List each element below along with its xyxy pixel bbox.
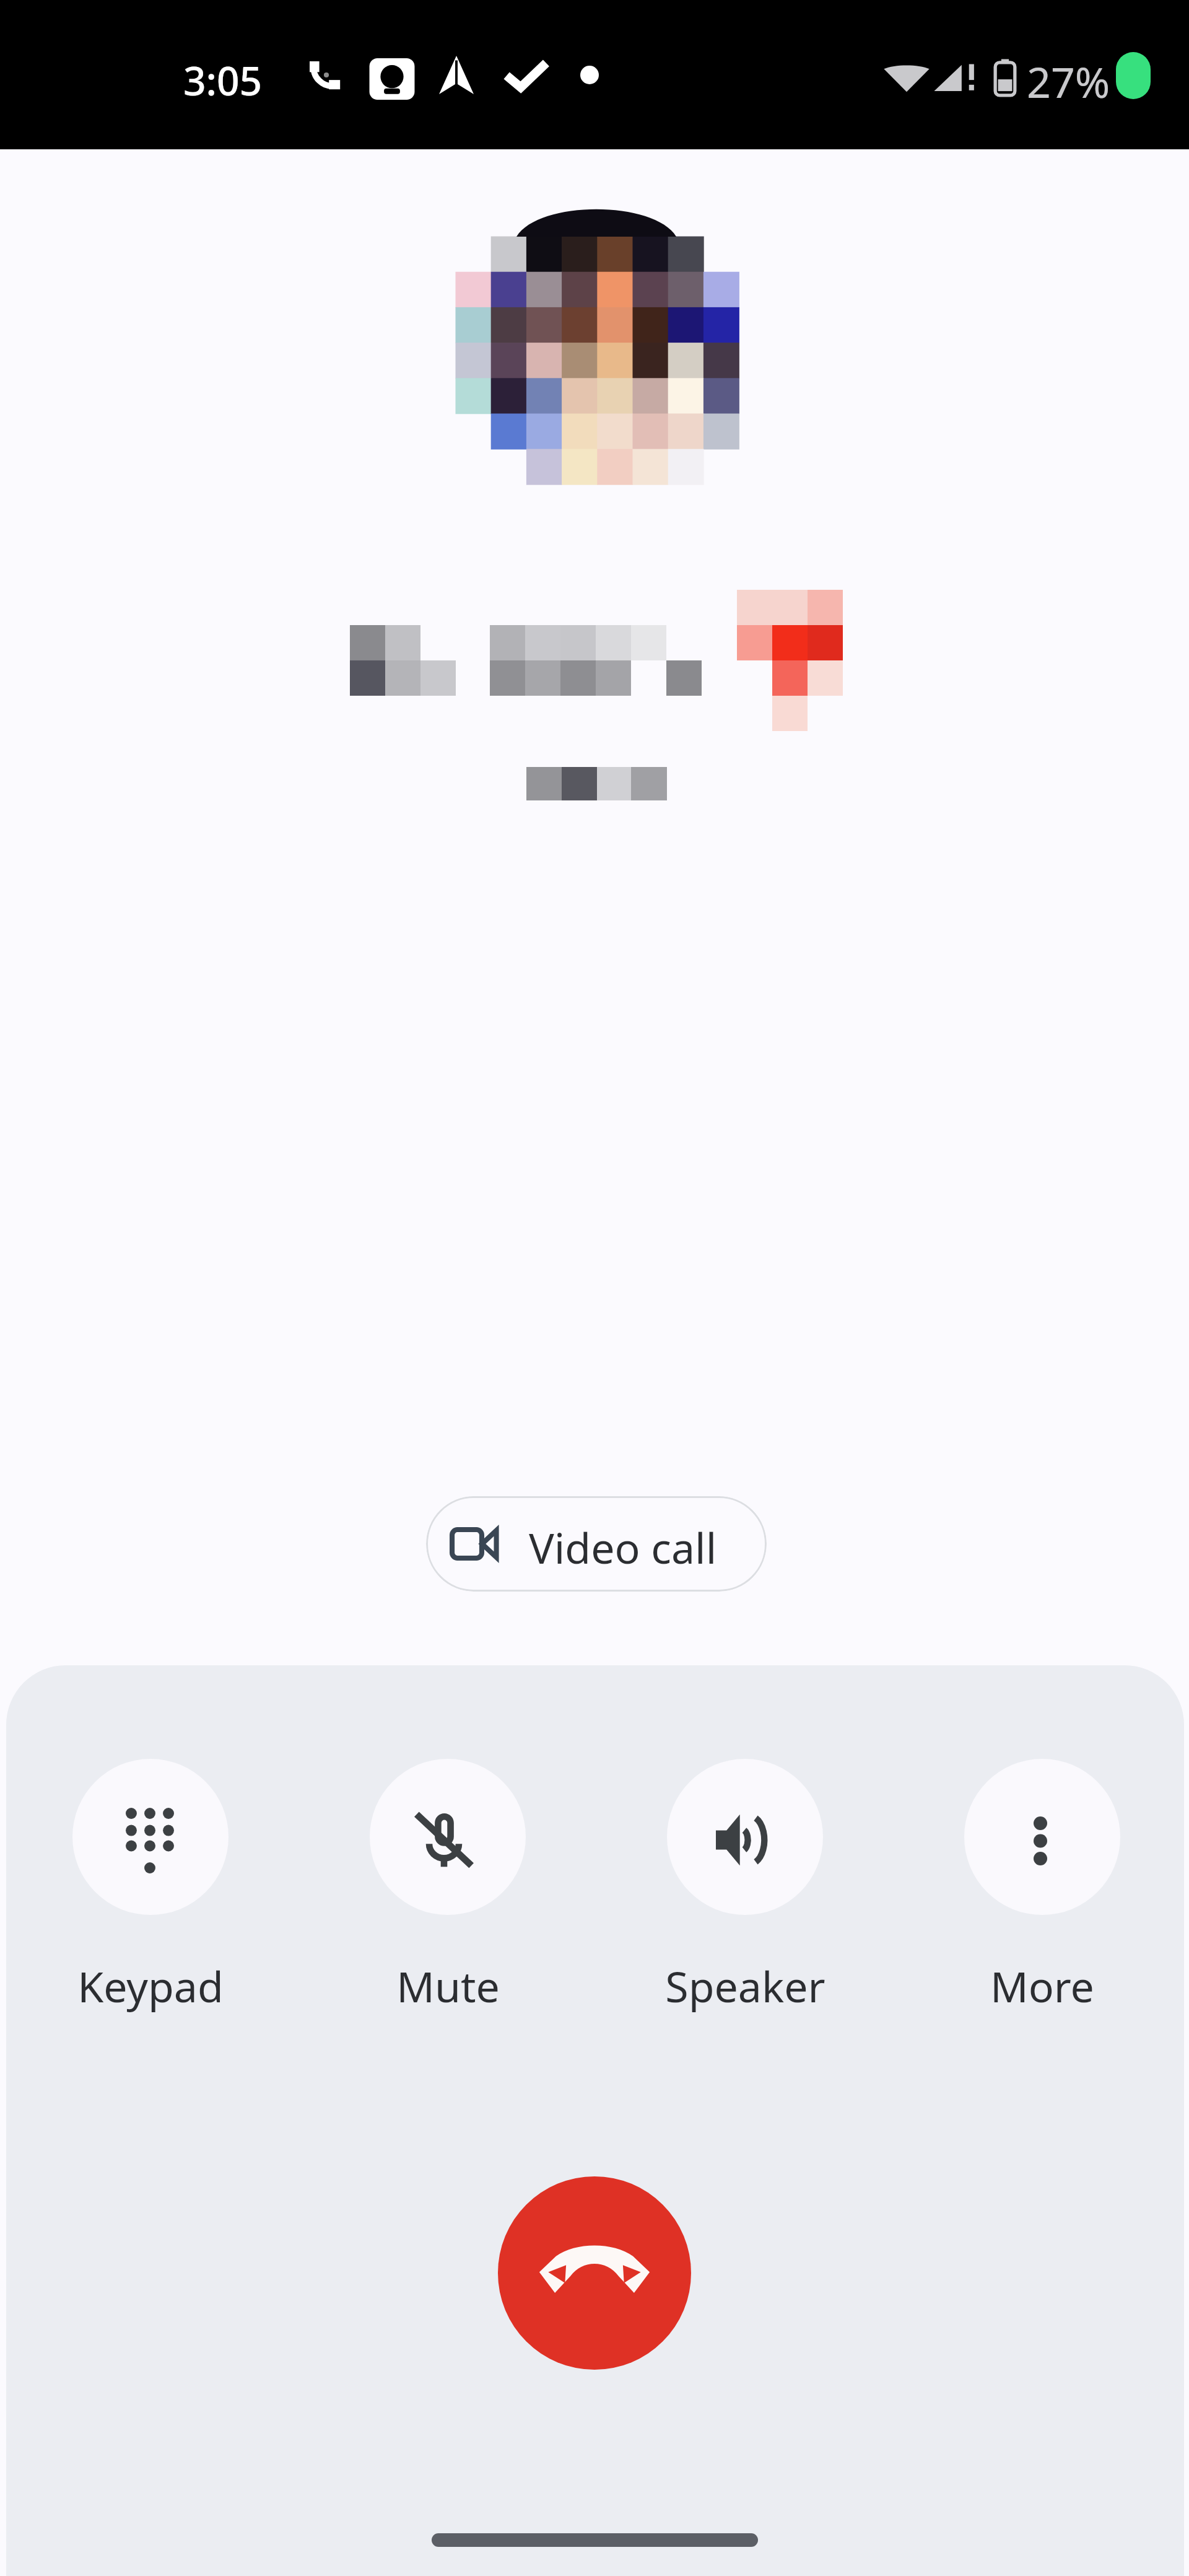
button[interactable]: Speaker (658, 1759, 832, 2015)
staticText: Speaker (665, 1957, 825, 2015)
button[interactable]: Keypad (64, 1759, 237, 2015)
staticText: More (990, 1957, 1094, 2015)
staticText: Video call (529, 1518, 717, 1576)
button[interactable]: Mute (361, 1759, 534, 2015)
button[interactable]: Video call (426, 1496, 767, 1592)
staticText: 27% (1027, 53, 1110, 110)
button[interactable]: More (956, 1759, 1129, 2015)
staticText: 3:05 (183, 53, 263, 107)
staticText: Mute (396, 1957, 500, 2015)
staticText: Keypad (77, 1957, 224, 2015)
button[interactable]: End call (498, 2176, 691, 2370)
